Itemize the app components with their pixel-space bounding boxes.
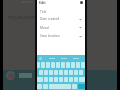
button[interactable] — [61, 62, 65, 68]
staticText: Save location — [40, 34, 79, 38]
button[interactable] — [59, 77, 63, 82]
button[interactable] — [44, 77, 48, 82]
button[interactable] — [59, 70, 63, 75]
button[interactable] — [69, 77, 73, 82]
staticText: Date created — [40, 17, 79, 21]
button[interactable]: Title — [37, 8, 85, 15]
staticText: my journal — [8, 14, 35, 21]
button[interactable] — [54, 77, 58, 82]
button[interactable] — [81, 62, 85, 68]
staticText: Edit — [39, 0, 46, 5]
button[interactable]: Save location — [37, 32, 85, 40]
button[interactable] — [79, 70, 83, 75]
button[interactable] — [37, 62, 40, 68]
button[interactable] — [39, 70, 43, 75]
staticText: Title — [40, 10, 82, 14]
button[interactable] — [37, 77, 43, 82]
button[interactable] — [44, 70, 48, 75]
button[interactable] — [37, 84, 42, 89]
button[interactable] — [71, 62, 75, 68]
button[interactable] — [49, 70, 53, 75]
button[interactable]: Profile — [6, 71, 15, 80]
button[interactable]: Mood — [37, 23, 85, 32]
button[interactable] — [54, 70, 58, 75]
button[interactable]: More options — [80, 1, 83, 4]
button[interactable] — [74, 77, 78, 82]
button[interactable] — [56, 62, 60, 68]
button[interactable] — [43, 84, 48, 89]
button[interactable] — [69, 70, 73, 75]
button[interactable]: Search — [39, 57, 42, 60]
staticText: Mood — [40, 26, 79, 30]
button[interactable]: Date created — [37, 15, 85, 23]
button[interactable] — [79, 77, 85, 82]
button[interactable] — [49, 84, 71, 89]
button[interactable] — [76, 62, 80, 68]
button[interactable] — [66, 62, 70, 68]
button[interactable] — [46, 62, 50, 68]
button[interactable] — [64, 77, 68, 82]
button[interactable] — [72, 84, 77, 89]
button[interactable] — [49, 77, 53, 82]
button[interactable] — [74, 70, 78, 75]
button[interactable] — [41, 62, 45, 68]
button[interactable] — [51, 62, 55, 68]
button[interactable] — [64, 70, 68, 75]
